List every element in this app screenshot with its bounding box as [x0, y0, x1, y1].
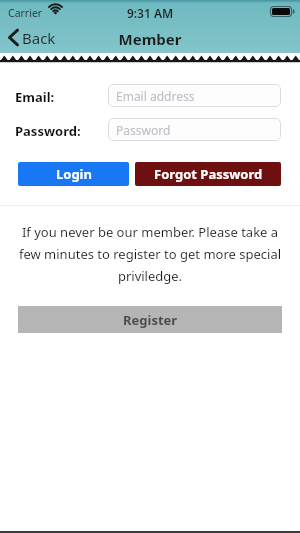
- staticText: Password:: [15, 122, 81, 140]
- button[interactable]: Password: [108, 118, 281, 141]
- button[interactable]: Login: [18, 162, 129, 186]
- staticText: Member: [0, 29, 300, 49]
- button[interactable]: Back: [0, 26, 80, 52]
- staticText: Password: [116, 122, 171, 138]
- staticText: If you never be our member. Please take …: [18, 223, 282, 285]
- staticText: Back: [22, 28, 56, 48]
- button[interactable]: Forgot Password: [135, 162, 281, 186]
- staticText: Carrier: [8, 6, 43, 20]
- staticText: Email:: [15, 88, 55, 106]
- staticText: Email address: [116, 88, 195, 104]
- button[interactable]: Email address: [108, 84, 281, 107]
- button[interactable]: Register: [18, 306, 282, 333]
- staticText: Register: [123, 311, 178, 329]
- staticText: Forgot Password: [154, 165, 263, 183]
- staticText: Login: [56, 165, 92, 183]
- staticText: 9:31 AM: [0, 5, 300, 21]
